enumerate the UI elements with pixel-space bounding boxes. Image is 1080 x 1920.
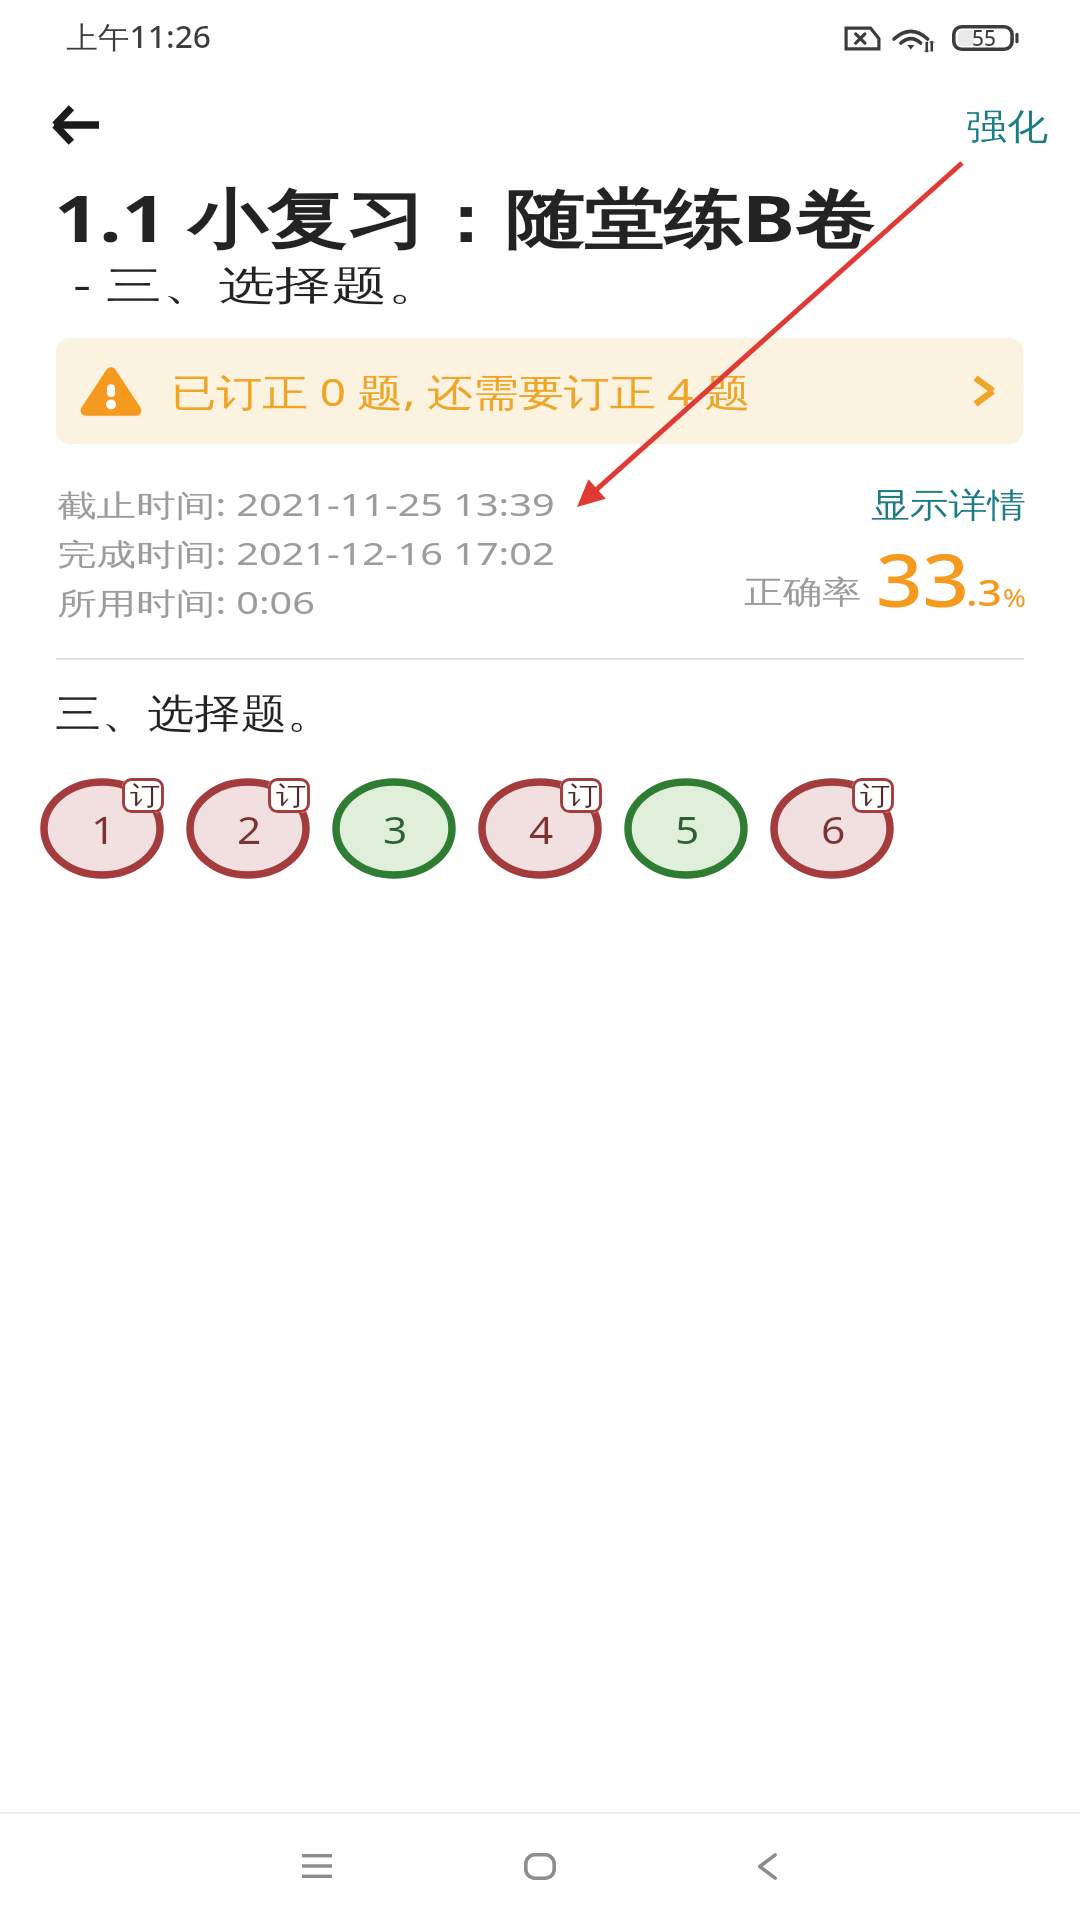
staticText: .3 — [966, 568, 1003, 617]
staticText: 订 — [568, 779, 598, 813]
button[interactable]: 1 — [40, 778, 168, 886]
button[interactable]: 显示详情 — [871, 483, 1027, 527]
button[interactable]: 4 — [478, 778, 606, 886]
staticText: - 三、选择题。 — [73, 256, 445, 311]
staticText: 强化 — [966, 104, 1048, 149]
staticText: 订 — [860, 779, 890, 813]
staticText: 4 — [529, 803, 554, 855]
staticText: 三、选择题。 — [55, 688, 333, 738]
staticText: 显示详情 — [871, 484, 1026, 527]
staticText: 完成时间: 2021-12-16 17:02 — [57, 533, 555, 574]
button[interactable]: Home — [486, 1815, 594, 1917]
staticText: 订 — [130, 779, 160, 813]
staticText: 5 — [675, 803, 700, 855]
staticText: 2 — [237, 803, 262, 855]
staticText: 1 — [91, 803, 116, 855]
staticText: 正确率 — [744, 572, 861, 612]
staticText: 截止时间: 2021-11-25 13:39 — [57, 484, 555, 525]
staticText: 3 — [383, 803, 408, 855]
staticText: 上午11:26 — [66, 16, 211, 57]
staticText: 订 — [276, 779, 306, 813]
staticText: 1.1 小复习：随堂练B卷 — [54, 174, 875, 261]
button[interactable]: 3 — [332, 778, 460, 886]
button[interactable]: Recent apps — [263, 1815, 371, 1917]
button[interactable]: Back — [34, 92, 118, 158]
button[interactable]: 6 — [770, 778, 898, 886]
staticText: 所用时间: 0:06 — [57, 582, 316, 623]
button[interactable]: 强化 — [952, 96, 1052, 157]
button[interactable]: Back — [713, 1815, 821, 1917]
staticText: 6 — [821, 803, 846, 855]
button[interactable]: 已订正 0 题, 还需要订正 4 题 — [56, 338, 1023, 444]
button[interactable]: 5 — [624, 778, 752, 886]
staticText: % — [1003, 580, 1026, 614]
button[interactable]: 2 — [186, 778, 314, 886]
staticText: 55 — [972, 24, 997, 50]
staticText: 已订正 0 题, 还需要订正 4 题 — [171, 365, 752, 417]
staticText: 33 — [876, 530, 970, 628]
